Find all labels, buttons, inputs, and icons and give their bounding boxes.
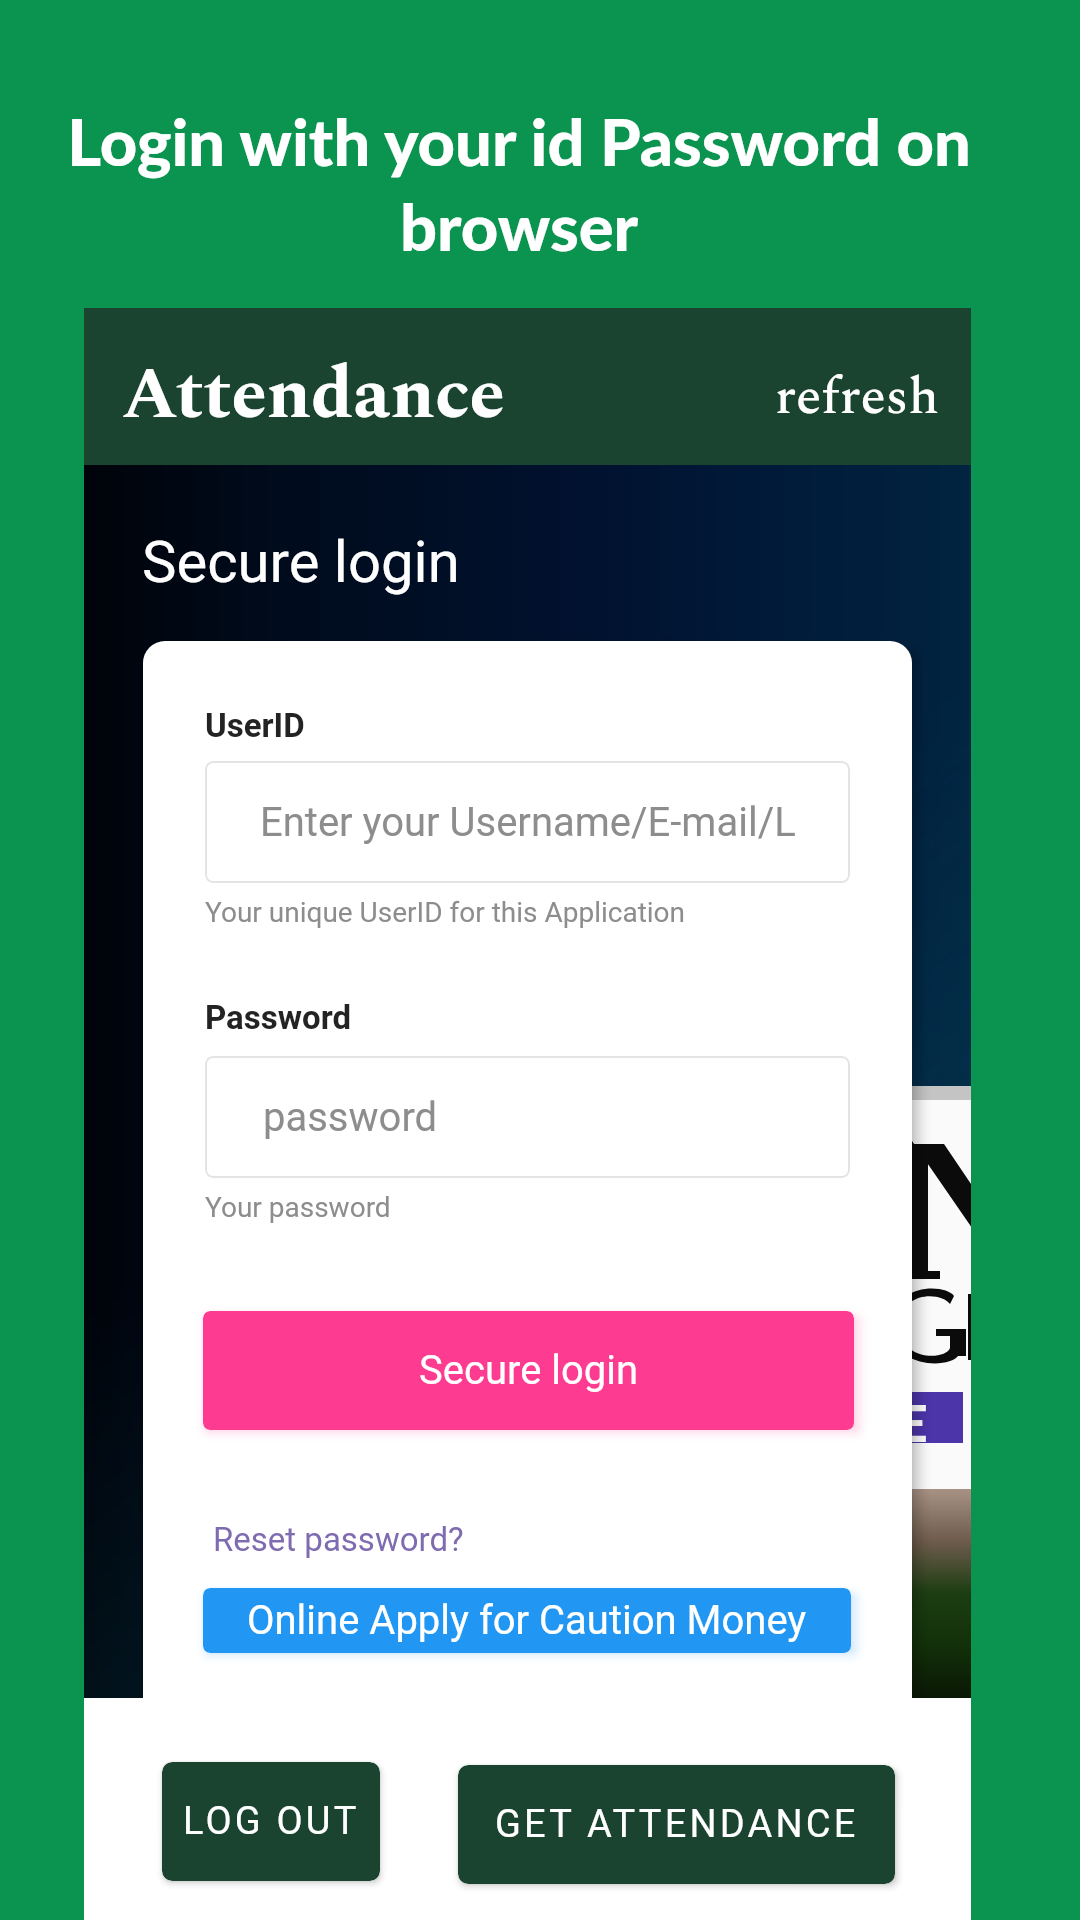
button[interactable]: Secure login [203,1311,854,1430]
staticText: UserID [205,706,305,745]
staticText: Password [205,998,352,1037]
button[interactable]: GET ATTENDANCE [458,1765,895,1884]
staticText: LOG OUT [183,1799,360,1844]
staticText: Online Apply for Caution Money [247,1597,807,1644]
staticText: Attendance [122,341,506,451]
button[interactable]: refresh [774,333,971,440]
button[interactable]: password [205,1056,850,1178]
button[interactable]: Enter your Username/E-mail/L [205,761,850,883]
staticText: Secure login [419,1347,639,1394]
button[interactable]: Online Apply for Caution Money [203,1588,851,1653]
staticText: Your unique UserID for this Application [205,896,686,929]
staticText: Secure login [142,528,460,596]
staticText: GE [860,1391,928,1442]
button[interactable]: LOG OUT [162,1762,380,1881]
staticText: Your password [205,1191,391,1224]
staticText: GET ATTENDANCE [495,1802,859,1847]
staticText: password [263,1094,438,1141]
staticText: Login with your id Password on browser [27,102,1011,265]
staticText: Enter your Username/E-mail/L [260,799,796,846]
staticText: refresh [775,358,940,437]
button[interactable]: Reset password? [213,1520,464,1559]
